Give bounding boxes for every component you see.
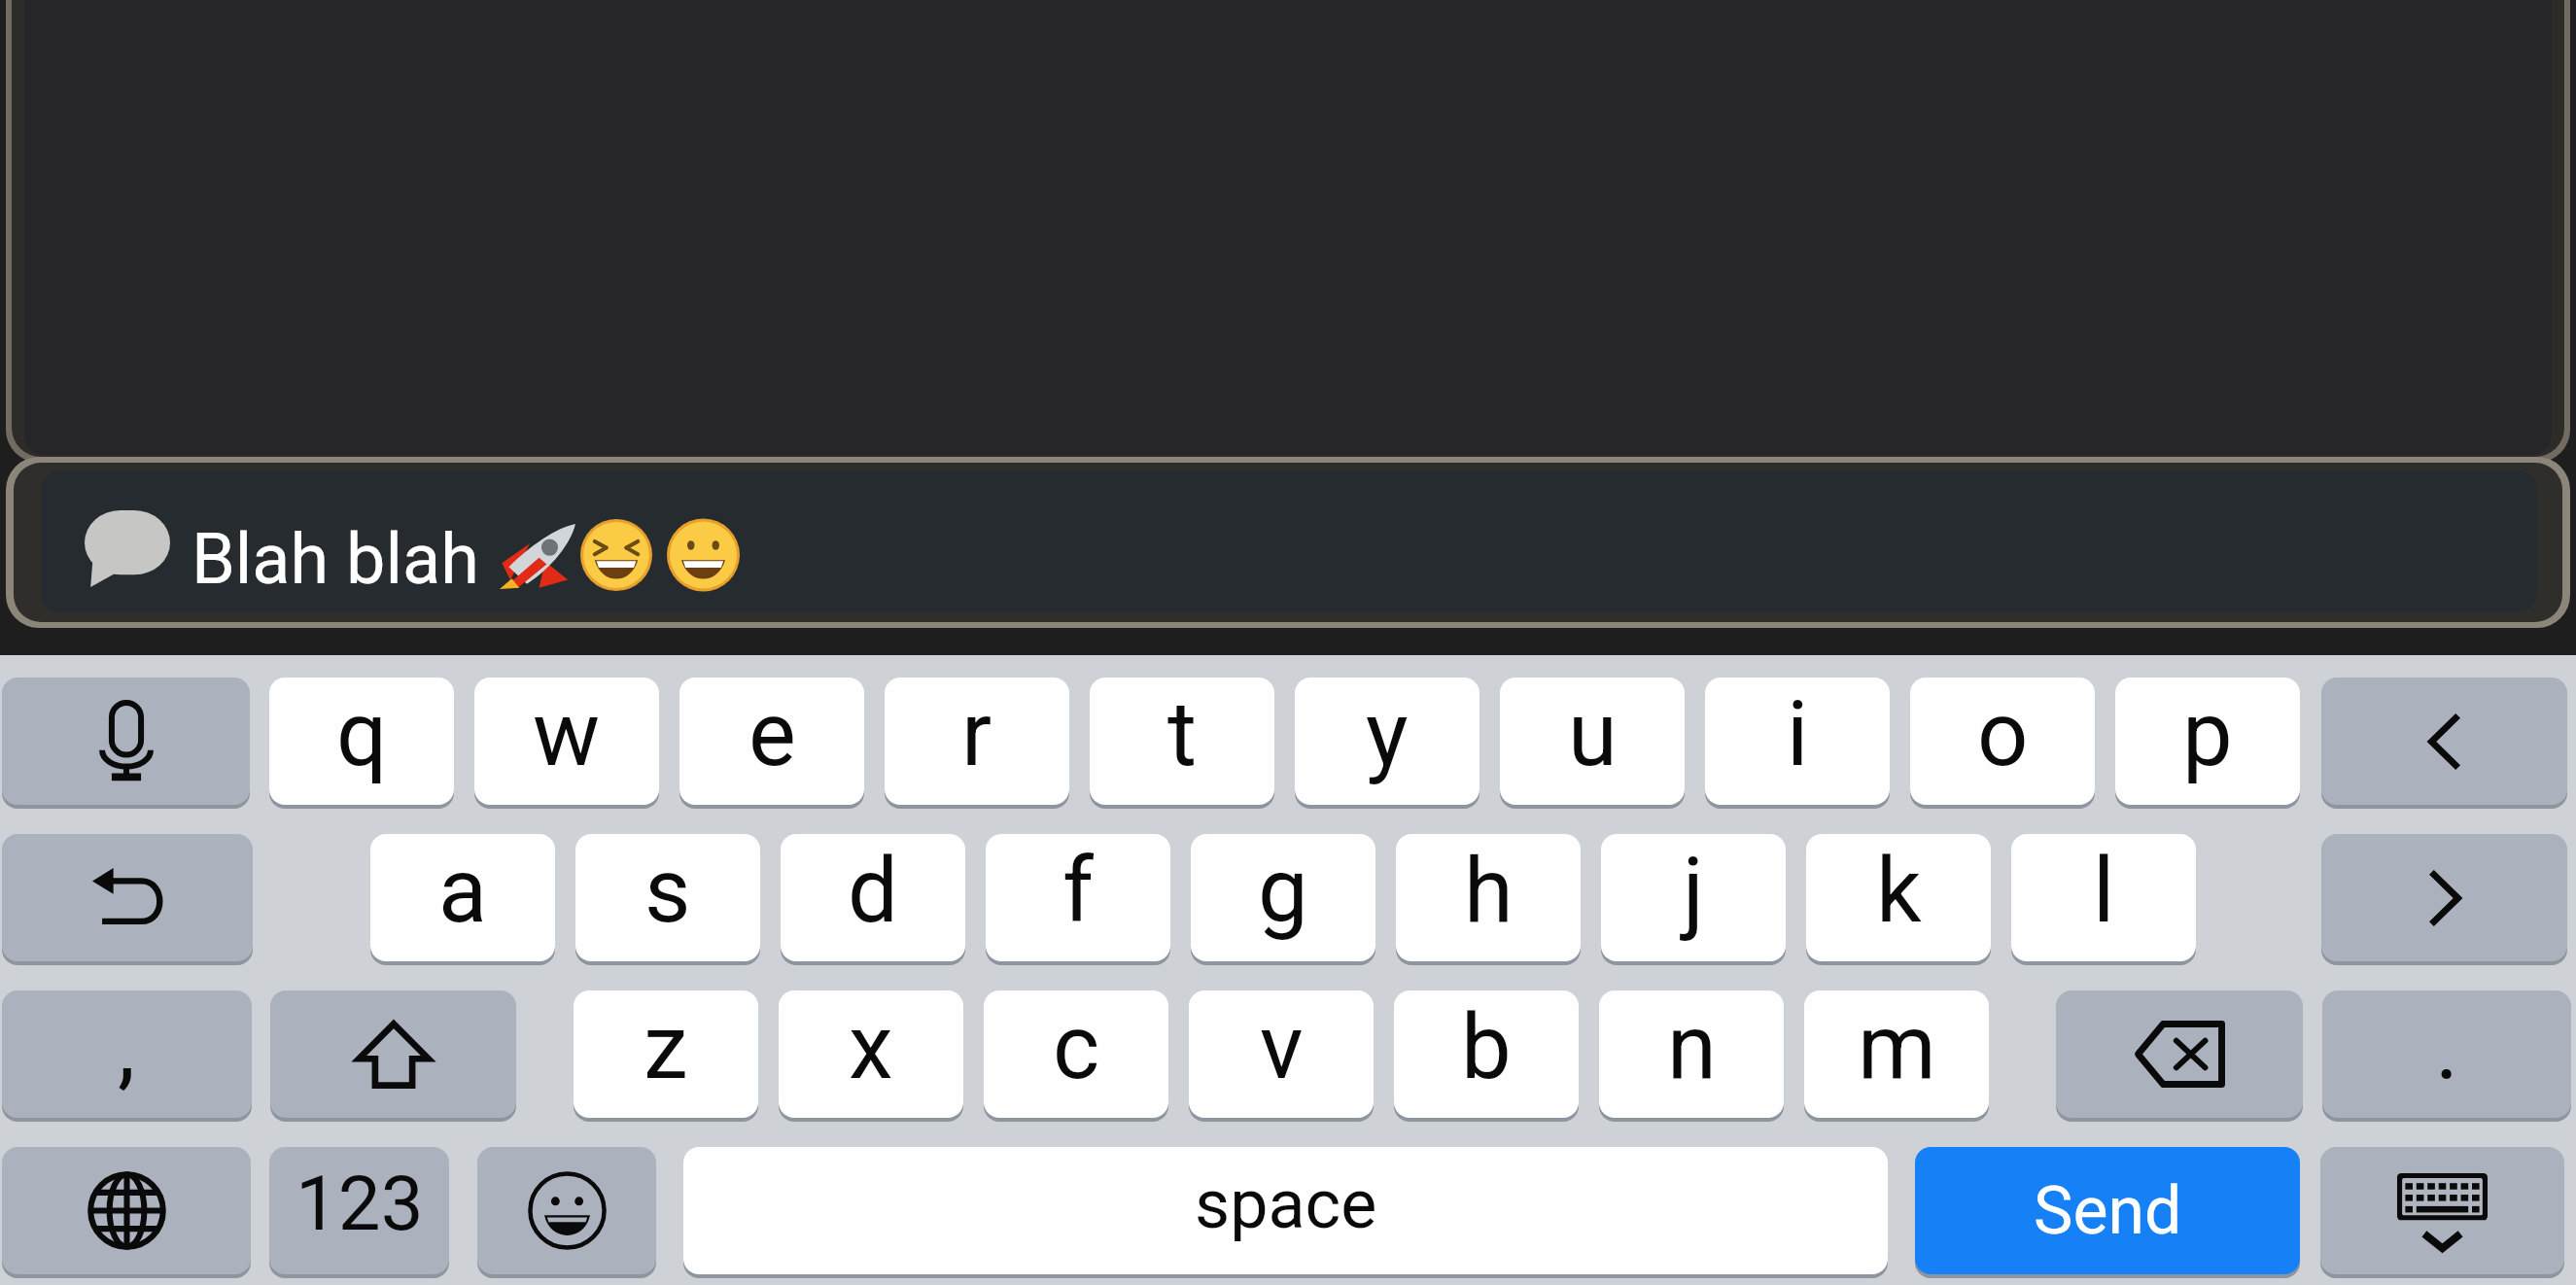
staticText: 123 xyxy=(296,1160,424,1248)
staticText: l xyxy=(2093,839,2115,944)
button[interactable]: b xyxy=(1394,990,1579,1118)
button[interactable]: Voice input xyxy=(2,677,250,805)
staticText: . xyxy=(2435,995,2459,1100)
staticText: r xyxy=(961,682,992,787)
staticText: space xyxy=(1195,1164,1377,1244)
staticText: u xyxy=(1568,682,1618,787)
button[interactable]: , xyxy=(2,990,252,1118)
staticText: e xyxy=(748,682,796,787)
staticText: o xyxy=(1977,682,2029,787)
staticText: n xyxy=(1667,995,1717,1100)
button[interactable]: 123 xyxy=(269,1147,449,1274)
staticText: Send xyxy=(2034,1172,2182,1250)
button[interactable]: v xyxy=(1189,990,1374,1118)
button[interactable]: a xyxy=(370,834,555,961)
button[interactable]: Hide keyboard xyxy=(2320,1147,2564,1274)
staticText: w xyxy=(533,682,601,787)
staticText: g xyxy=(1258,839,1308,944)
button[interactable]: u xyxy=(1500,677,1685,805)
button[interactable]: d xyxy=(781,834,965,961)
button[interactable]: q xyxy=(269,677,454,805)
staticText: , xyxy=(118,995,136,1100)
staticText: a xyxy=(438,839,488,944)
staticText: i xyxy=(1787,682,1809,787)
button[interactable]: o xyxy=(1910,677,2095,805)
button[interactable]: i xyxy=(1705,677,1890,805)
staticText: Blah blah xyxy=(191,518,479,600)
button[interactable]: Next field xyxy=(2321,834,2567,961)
button[interactable]: n xyxy=(1599,990,1784,1118)
button[interactable]: space xyxy=(683,1147,1888,1274)
button[interactable]: t xyxy=(1090,677,1274,805)
button[interactable]: c xyxy=(984,990,1168,1118)
button[interactable]: k xyxy=(1806,834,1991,961)
button[interactable]: m xyxy=(1804,990,1989,1118)
button[interactable]: h xyxy=(1396,834,1581,961)
button[interactable]: g xyxy=(1191,834,1375,961)
staticText: d xyxy=(848,839,898,944)
button[interactable]: e xyxy=(679,677,864,805)
button[interactable]: Change language xyxy=(2,1147,251,1274)
button[interactable]: w xyxy=(474,677,659,805)
button[interactable]: r xyxy=(885,677,1069,805)
button[interactable]: Return xyxy=(2,834,253,961)
button[interactable]: f xyxy=(986,834,1170,961)
button[interactable]: Emoji xyxy=(477,1147,656,1274)
button[interactable]: Shift xyxy=(270,990,516,1118)
button[interactable]: Backspace xyxy=(2056,990,2303,1118)
button[interactable]: l xyxy=(2011,834,2196,961)
button[interactable]: s xyxy=(575,834,760,961)
staticText: b xyxy=(1461,995,1512,1100)
button[interactable]: p xyxy=(2115,677,2300,805)
staticText: j xyxy=(1683,839,1705,944)
staticText: c xyxy=(1053,995,1100,1100)
staticText: m xyxy=(1858,995,1936,1100)
staticText: y xyxy=(1366,682,1409,787)
button[interactable]: y xyxy=(1295,677,1479,805)
staticText: t xyxy=(1167,682,1198,787)
button[interactable]: Previous field xyxy=(2321,677,2567,805)
staticText: q xyxy=(336,682,388,787)
staticText: k xyxy=(1876,839,1922,944)
staticText: p xyxy=(2182,682,2233,787)
staticText: z xyxy=(644,995,688,1100)
button[interactable]: j xyxy=(1601,834,1786,961)
button[interactable]: Blah blah xyxy=(41,470,2537,612)
button[interactable]: . xyxy=(2322,990,2571,1118)
button[interactable]: Send xyxy=(1915,1147,2300,1274)
staticText: h xyxy=(1464,839,1514,944)
staticText: x xyxy=(849,995,893,1100)
button[interactable]: x xyxy=(779,990,963,1118)
staticText: s xyxy=(644,839,691,944)
staticText: f xyxy=(1062,839,1094,944)
staticText: v xyxy=(1260,995,1304,1100)
button[interactable]: z xyxy=(574,990,758,1118)
